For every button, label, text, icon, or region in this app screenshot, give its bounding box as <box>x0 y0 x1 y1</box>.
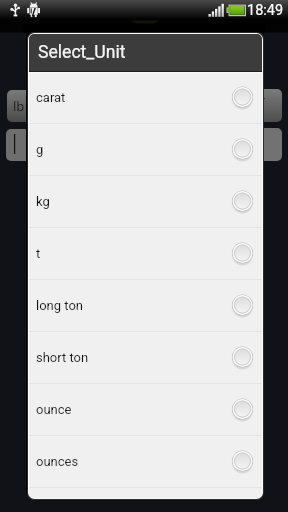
staticText: carat <box>36 90 229 105</box>
button[interactable]: g <box>29 124 262 176</box>
button[interactable]: kg <box>29 176 262 228</box>
staticText: Select_Unit <box>38 42 126 63</box>
button[interactable]: short ton <box>29 332 262 384</box>
button[interactable]: Unit dropdown <box>254 89 282 122</box>
button[interactable]: lb <box>7 90 35 122</box>
staticText: ounces <box>36 454 229 469</box>
staticText: long ton <box>36 298 229 313</box>
staticText: 18:49 <box>247 2 284 19</box>
staticText: kg <box>36 194 229 209</box>
staticText: ounce <box>36 402 229 417</box>
button[interactable]: ounces <box>29 436 262 488</box>
staticText: g <box>36 142 229 157</box>
button[interactable] <box>6 129 36 161</box>
button[interactable]: t <box>29 228 262 280</box>
button[interactable]: long ton <box>29 280 262 332</box>
staticText: short ton <box>36 350 229 365</box>
staticText: t <box>36 246 229 261</box>
button[interactable]: carat <box>29 72 262 124</box>
staticText: lb <box>13 97 25 115</box>
button[interactable]: ounce <box>29 384 262 436</box>
